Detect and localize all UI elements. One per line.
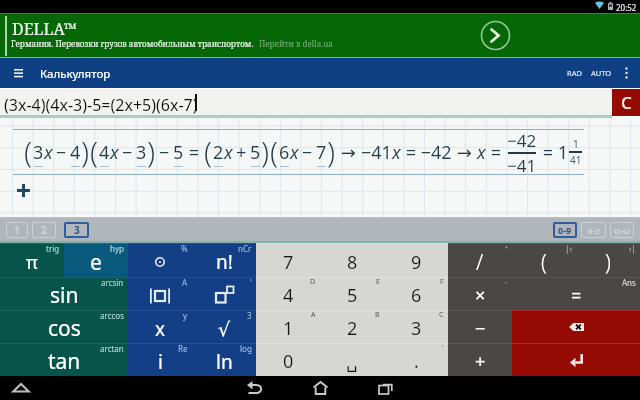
staticText: AUTO xyxy=(591,68,612,78)
button[interactable]: DELLA™ xyxy=(0,13,640,58)
button[interactable]: |‹ xyxy=(512,243,576,277)
staticText: i xyxy=(158,349,163,375)
staticText: 3 xyxy=(411,316,422,341)
staticText: ) xyxy=(81,132,90,171)
staticText: + xyxy=(233,140,250,165)
button[interactable]: Recent apps xyxy=(363,376,407,399)
button[interactable]: B xyxy=(320,310,384,343)
button[interactable]: D xyxy=(256,277,320,310)
staticText: 4 xyxy=(99,140,110,165)
button[interactable]: nCr xyxy=(192,243,256,277)
staticText: B xyxy=(375,310,380,320)
staticText: x xyxy=(224,140,233,165)
button[interactable]: a-z xyxy=(581,222,606,238)
staticText: RAD xyxy=(567,68,582,78)
staticText: arctan xyxy=(100,343,124,354)
button[interactable]: Navigation menu xyxy=(4,61,32,85)
staticText: E xyxy=(376,277,380,287)
button[interactable]: α-ω xyxy=(610,222,634,238)
button[interactable]: log xyxy=(192,343,256,376)
staticText: cos xyxy=(48,314,81,343)
button[interactable]: Re xyxy=(128,343,192,376)
button[interactable]: 3 xyxy=(192,310,256,343)
button[interactable]: A xyxy=(256,310,320,343)
staticText: 0 xyxy=(283,349,294,374)
staticText: ) xyxy=(147,132,156,171)
staticText: 1 xyxy=(573,137,579,151)
button[interactable]: · xyxy=(448,277,512,310)
staticText: 6 xyxy=(279,140,290,165)
button[interactable]: y xyxy=(128,310,192,343)
staticText: Re xyxy=(178,343,188,354)
button[interactable]: 9 xyxy=(384,243,448,277)
staticText: 2 xyxy=(213,140,224,165)
staticText: = xyxy=(571,283,582,308)
button[interactable]: 2 xyxy=(32,222,56,238)
staticText: x xyxy=(44,140,53,165)
button[interactable]: 3 xyxy=(64,222,89,238)
button[interactable]: Enter xyxy=(512,343,640,376)
button[interactable]: Back xyxy=(232,376,276,399)
staticText: 7 xyxy=(316,140,327,165)
staticText: 1 xyxy=(14,223,20,237)
staticText: x xyxy=(477,140,486,165)
staticText: x xyxy=(155,316,166,342)
staticText: − xyxy=(53,140,70,165)
button[interactable]: Backspace xyxy=(512,310,640,343)
staticText: ' xyxy=(250,277,252,288)
staticText: ( xyxy=(270,132,279,171)
staticText: = −42 xyxy=(401,140,452,165)
button[interactable]: Power xyxy=(192,277,256,310)
staticText: ⁺ xyxy=(505,243,508,254)
button[interactable]: Home xyxy=(298,376,342,399)
button[interactable]: Ans xyxy=(512,277,640,310)
staticText: tan xyxy=(48,347,81,376)
button[interactable]: AUTO xyxy=(587,61,615,85)
button[interactable]: arctan xyxy=(0,343,128,376)
button[interactable]: Degree xyxy=(128,243,192,277)
button[interactable]: E xyxy=(320,277,384,310)
button[interactable]: ␣ xyxy=(320,343,384,376)
button[interactable]: ' xyxy=(384,343,448,376)
staticText: 6 xyxy=(411,283,422,308)
button[interactable]: 8 xyxy=(320,243,384,277)
staticText: −41 xyxy=(507,154,537,175)
button[interactable]: arcsin xyxy=(0,277,128,310)
button[interactable]: RAD xyxy=(561,61,587,85)
staticText: |‹ xyxy=(565,243,572,254)
button[interactable]: 0 xyxy=(256,343,320,376)
staticText: → xyxy=(452,140,477,165)
staticText: ( xyxy=(24,132,33,171)
button[interactable]: Open della.ua xyxy=(480,20,511,51)
staticText: A xyxy=(311,310,316,320)
button[interactable]: ⁺ xyxy=(448,243,512,277)
button[interactable]: F xyxy=(384,277,448,310)
staticText: F xyxy=(440,277,444,287)
staticText: 3 xyxy=(74,223,80,237)
button[interactable]: Add expression xyxy=(13,180,34,200)
staticText: − xyxy=(156,140,173,165)
button[interactable]: Show status bar xyxy=(4,376,38,399)
button[interactable]: arccos xyxy=(0,310,128,343)
button[interactable]: More options xyxy=(615,61,637,85)
staticText: 3 xyxy=(33,140,44,165)
button[interactable]: trig xyxy=(0,243,64,277)
staticText: √ xyxy=(218,318,231,340)
button[interactable]: 0-9 xyxy=(553,222,577,238)
button[interactable]: + xyxy=(448,343,512,376)
button[interactable]: 7 xyxy=(256,243,320,277)
button[interactable]: Absolute value xyxy=(128,277,192,310)
staticText: log xyxy=(240,343,252,354)
button[interactable]: C xyxy=(384,310,448,343)
button[interactable]: hyp xyxy=(64,243,128,277)
staticText: 3 xyxy=(136,140,147,165)
staticText: − xyxy=(119,140,136,165)
button[interactable]: 1 xyxy=(6,222,28,238)
staticText: % xyxy=(181,243,188,254)
button[interactable]: − xyxy=(448,310,512,343)
button[interactable]: ›| xyxy=(576,243,640,277)
staticText: n! xyxy=(216,249,233,275)
button[interactable]: C xyxy=(612,89,640,116)
staticText: trig xyxy=(46,243,60,254)
staticText: / xyxy=(476,248,484,277)
